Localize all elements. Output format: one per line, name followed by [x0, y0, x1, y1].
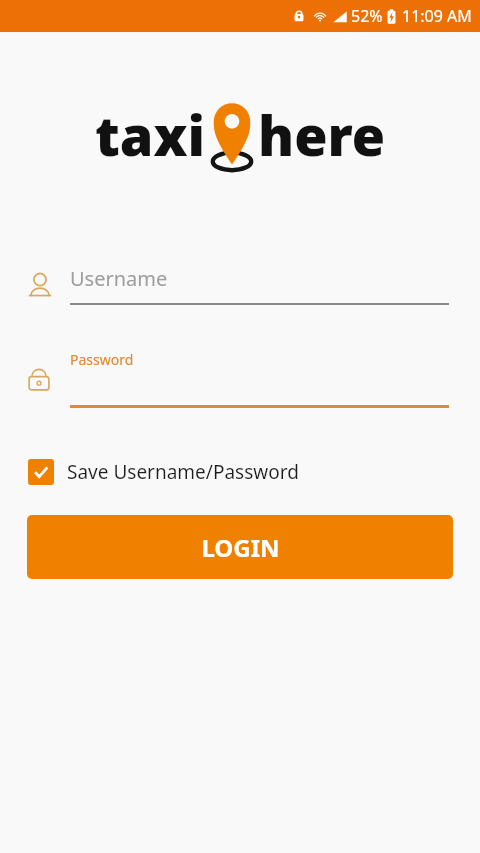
button[interactable]: Username	[24, 258, 449, 312]
staticText: Password	[70, 350, 134, 369]
staticText: Username	[70, 265, 168, 292]
staticText: Save Username/Password	[67, 459, 299, 485]
staticText: LOGIN	[201, 531, 280, 564]
button[interactable]: Save Username/Password	[28, 452, 299, 492]
staticText: 11:09 AM	[402, 5, 472, 27]
button[interactable]: LOGIN	[27, 515, 453, 579]
button[interactable]: Password	[24, 342, 449, 416]
staticText: 52%	[351, 5, 383, 27]
other: Password	[24, 364, 54, 394]
other: Username	[24, 269, 56, 301]
staticText: here	[258, 98, 386, 172]
staticText: taxi	[95, 98, 206, 172]
